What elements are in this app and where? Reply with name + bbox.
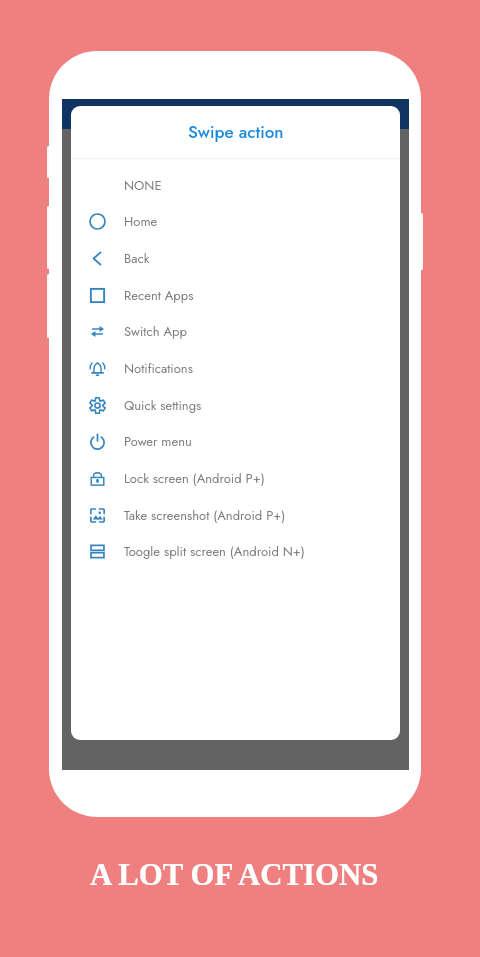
staticText: Recent Apps: [124, 286, 194, 305]
button[interactable]: Recent Apps: [71, 277, 400, 314]
staticText: Toogle split screen (Android N+): [124, 542, 305, 561]
staticText: A LOT OF ACTIONS: [90, 858, 379, 892]
staticText: Home: [124, 212, 158, 231]
staticText: Power menu: [124, 432, 192, 451]
button[interactable]: Home: [71, 203, 400, 240]
staticText: NONE: [124, 176, 162, 195]
button[interactable]: Switch App: [71, 313, 400, 350]
staticText: Back: [124, 249, 150, 268]
button[interactable]: Toogle split screen (Android N+): [71, 533, 400, 570]
button[interactable]: Notifications: [71, 350, 400, 387]
button[interactable]: Lock screen (Android P+): [71, 460, 400, 497]
staticText: Notifications: [124, 359, 193, 378]
button[interactable]: Back: [71, 240, 400, 277]
button[interactable]: Quick settings: [71, 387, 400, 424]
button[interactable]: NONE: [71, 167, 400, 204]
staticText: Lock screen (Android P+): [124, 469, 265, 488]
button[interactable]: Power menu: [71, 423, 400, 460]
staticText: Swipe action: [188, 120, 284, 145]
staticText: Quick settings: [124, 396, 202, 415]
staticText: Switch App: [124, 322, 187, 341]
staticText: Take screenshot (Android P+): [124, 506, 286, 525]
button[interactable]: Take screenshot (Android P+): [71, 497, 400, 534]
